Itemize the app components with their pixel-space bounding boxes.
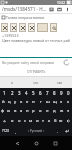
button[interactable]: Refresh [62, 58, 71, 67]
button[interactable]: л [44, 106, 51, 116]
button[interactable]: что [24, 77, 48, 88]
staticText: ?123 [2, 129, 9, 133]
button[interactable]: 2 [8, 88, 16, 97]
staticText: , [15, 129, 16, 134]
button[interactable]: ОТПРАВИТЬ [24, 68, 49, 76]
staticText: . [57, 129, 58, 134]
button[interactable] [19, 23, 26, 32]
button[interactable]: 5 [30, 88, 37, 97]
button[interactable]: г [37, 97, 44, 106]
staticText: з [60, 99, 63, 105]
button[interactable]: Period [53, 126, 61, 136]
button[interactable]: я [0, 77, 24, 88]
staticText: ь [48, 118, 51, 124]
button[interactable]: Save [55, 5, 63, 13]
button[interactable]: э [65, 106, 72, 116]
button[interactable]: н [30, 97, 37, 106]
staticText: с [24, 118, 27, 124]
button[interactable]: Attach [47, 5, 55, 13]
staticText: б [54, 118, 57, 124]
button[interactable]: 4 [23, 88, 30, 97]
staticText: Только непрочитанные [6, 15, 45, 20]
button[interactable]: щ [51, 97, 58, 106]
staticText: 8 [53, 90, 56, 96]
staticText: ф [1, 108, 5, 114]
button[interactable]: д [51, 106, 58, 116]
staticText: я [11, 81, 13, 85]
button[interactable]: Home [32, 139, 41, 148]
staticText: л [46, 108, 49, 114]
button[interactable]: More options [63, 5, 71, 13]
button[interactable]: з [58, 97, 65, 106]
button[interactable]: ю [58, 116, 64, 126]
button[interactable]: ь [46, 116, 52, 126]
staticText: м [29, 118, 33, 124]
staticText: 2 [11, 90, 14, 96]
staticText: что [33, 81, 39, 85]
button[interactable] [37, 23, 48, 32]
button[interactable]: ы [6, 106, 12, 116]
staticText: /msds/1384571 - H… [2, 6, 47, 12]
staticText: Вы увидите сайту своей отправки [2, 61, 55, 65]
staticText: +1395523 [2, 33, 19, 38]
button[interactable]: 7 [44, 88, 51, 97]
button[interactable] [10, 23, 17, 32]
button[interactable]: ?123 [0, 126, 11, 136]
button[interactable]: Shift [0, 116, 9, 126]
button[interactable]: 0 [65, 88, 72, 97]
button[interactable]: м [28, 116, 34, 126]
button[interactable]: р [30, 106, 37, 116]
button[interactable]: ‹ Русский › [19, 126, 53, 136]
staticText: 3 [18, 90, 21, 96]
button[interactable]: Только непрочитанные [0, 14, 72, 21]
button[interactable]: т [40, 116, 46, 126]
button[interactable]: б [52, 116, 58, 126]
button[interactable]: й [0, 97, 6, 106]
staticText: ч [18, 118, 21, 124]
staticText: 0 [67, 90, 70, 96]
button[interactable]: Comma [11, 126, 19, 136]
staticText: а [20, 108, 23, 114]
staticText: Цвет клавиатуры новый от тепла к раб [2, 38, 70, 43]
button[interactable]: в [12, 106, 18, 116]
button[interactable]: у [12, 97, 18, 106]
button[interactable]: 9 [58, 88, 65, 97]
button[interactable] [28, 23, 35, 32]
button[interactable]: Back [13, 139, 22, 148]
staticText: ОТПРАВИТЬ [27, 70, 46, 74]
staticText: х [67, 99, 70, 105]
button[interactable]: и [34, 116, 40, 126]
button[interactable]: Recents [51, 139, 60, 148]
button[interactable]: Backspace [64, 116, 72, 126]
button[interactable]: я [9, 116, 16, 126]
button[interactable]: с [22, 116, 28, 126]
staticText: ж [60, 108, 64, 114]
button[interactable]: п [24, 106, 30, 116]
button[interactable]: ж [58, 106, 65, 116]
button[interactable] [1, 23, 8, 32]
staticText: ы [7, 108, 11, 114]
staticText: н [32, 99, 35, 105]
button[interactable]: х [65, 97, 72, 106]
button[interactable]: 1 [0, 88, 8, 97]
button[interactable]: к [18, 97, 24, 106]
staticText: и [36, 118, 39, 124]
button[interactable]: 8 [51, 88, 58, 97]
button[interactable]: ц [6, 97, 12, 106]
button[interactable]: ш [44, 97, 51, 106]
button[interactable]: о [37, 106, 44, 116]
button[interactable]: е [24, 97, 30, 106]
staticText: 6 [39, 90, 42, 96]
button[interactable]: 3 [16, 88, 23, 97]
staticText: 5 [32, 90, 35, 96]
button[interactable]: ч [16, 116, 22, 126]
button[interactable]: Enter [61, 126, 72, 136]
button[interactable]: 6 [37, 88, 44, 97]
staticText: 7 [46, 90, 49, 96]
staticText: в [14, 108, 17, 114]
button[interactable] [50, 23, 57, 32]
button[interactable]: как [48, 77, 72, 88]
staticText: й [2, 99, 5, 105]
button[interactable]: а [18, 106, 24, 116]
button[interactable]: ф [0, 106, 6, 116]
